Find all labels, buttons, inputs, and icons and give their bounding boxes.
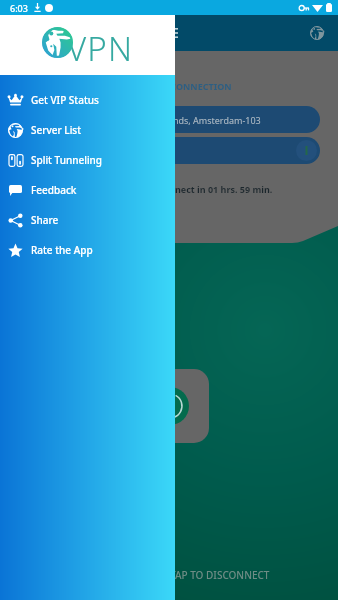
- button[interactable]: Server List: [0, 115, 175, 145]
- staticText: 6:03: [10, 2, 28, 14]
- button[interactable]: Share: [0, 205, 175, 235]
- staticText: Server List: [31, 123, 82, 137]
- button[interactable]: Feedback: [0, 175, 175, 205]
- button[interactable]: Open navigation menu: [159, 21, 183, 45]
- staticText: TAP TO DISCONNECT: [170, 568, 270, 582]
- staticText: Split Tunneling: [31, 153, 103, 167]
- staticText: Rate the App: [31, 243, 93, 257]
- button[interactable]: Netherlands, Amsterdam-103: [112, 106, 320, 133]
- staticText: Get VIP Status: [31, 93, 99, 107]
- button[interactable]: Get VIP Status: [0, 85, 175, 115]
- staticText: VPN: [67, 26, 134, 71]
- button[interactable]: Rate the App: [0, 235, 175, 265]
- staticText: Netherlands, Amsterdam-103: [136, 114, 261, 126]
- button[interactable]: Tap to disconnect: [131, 369, 209, 443]
- staticText: Auto disconnect in 01 hrs. 59 min.: [122, 183, 273, 195]
- staticText: Feedback: [31, 183, 77, 197]
- button[interactable]: Split Tunneling: [0, 145, 175, 175]
- button[interactable]: Server list: [304, 20, 330, 46]
- staticText: Share: [31, 213, 59, 227]
- staticText: CURRENT CONNECTION: [126, 80, 232, 92]
- button[interactable]: [112, 137, 320, 164]
